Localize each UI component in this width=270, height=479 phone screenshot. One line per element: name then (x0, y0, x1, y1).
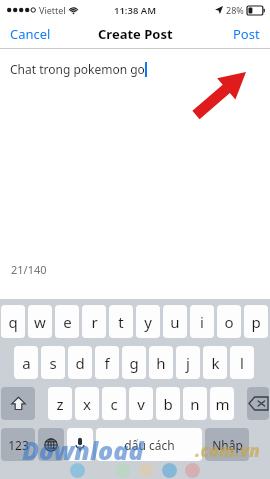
button[interactable]: b (156, 387, 180, 420)
button[interactable]: f (95, 346, 119, 379)
staticText: 11:38 AM (114, 4, 157, 17)
button[interactable]: c (102, 387, 126, 420)
staticText: r (91, 312, 98, 332)
button[interactable]: a (14, 346, 38, 379)
staticText: l (240, 353, 244, 373)
staticText: f (104, 353, 110, 373)
button[interactable]: d (68, 346, 92, 379)
button[interactable]: w (28, 305, 52, 338)
staticText: a (22, 353, 31, 373)
staticText: Nhập (212, 437, 243, 453)
staticText: 28% (226, 4, 244, 16)
staticText: z (56, 394, 64, 414)
button[interactable]: Shift (1, 387, 35, 420)
staticText: b (163, 394, 173, 414)
staticText: e (63, 312, 72, 332)
button[interactable]: e (55, 305, 79, 338)
button[interactable]: l (230, 346, 254, 379)
button[interactable]: r (82, 305, 106, 338)
button[interactable]: p (244, 305, 268, 338)
button[interactable]: Dictate (67, 428, 93, 461)
button[interactable]: 123 (1, 428, 35, 461)
staticText: k (211, 353, 220, 373)
staticText: o (224, 312, 234, 332)
button[interactable]: Backspace (247, 387, 269, 420)
staticText: dấu cách (124, 437, 175, 453)
button[interactable]: g (122, 346, 146, 379)
button[interactable]: h (149, 346, 173, 379)
staticText: d (75, 353, 85, 373)
staticText: s (49, 353, 57, 373)
button[interactable]: dấu cách (96, 428, 202, 461)
button[interactable]: z (48, 387, 72, 420)
staticText: Cancel (10, 25, 51, 43)
staticText: Create Post (98, 25, 173, 43)
button[interactable]: k (203, 346, 227, 379)
staticText: h (156, 353, 166, 373)
staticText: 123 (8, 437, 29, 453)
staticText: q (8, 312, 18, 332)
staticText: y (144, 312, 152, 332)
staticText: 21/140 (11, 262, 47, 277)
staticText: g (129, 353, 139, 373)
button[interactable]: y (136, 305, 160, 338)
staticText: Download (22, 433, 144, 467)
staticText: x (83, 394, 91, 414)
staticText: .com.vn (195, 439, 260, 462)
staticText: c (110, 394, 118, 414)
staticText: v (137, 394, 145, 414)
staticText: u (170, 312, 180, 332)
button[interactable]: Post (231, 21, 262, 47)
button[interactable]: m (210, 387, 234, 420)
button[interactable]: n (183, 387, 207, 420)
staticText: Post (233, 25, 260, 43)
staticText: Viettel (39, 4, 66, 16)
button[interactable]: Switch keyboard (38, 428, 64, 461)
staticText: w (34, 312, 46, 332)
staticText: m (215, 394, 230, 414)
button[interactable]: Nhập (205, 428, 249, 461)
button[interactable]: Cancel (8, 21, 53, 47)
button[interactable]: q (1, 305, 25, 338)
staticText: n (190, 394, 200, 414)
staticText: p (251, 312, 261, 332)
button[interactable]: i (190, 305, 214, 338)
staticText: t (118, 312, 124, 332)
button[interactable]: s (41, 346, 65, 379)
staticText: Chat trong pokemon go (10, 61, 145, 77)
staticText: i (200, 312, 204, 332)
button[interactable]: j (176, 346, 200, 379)
staticText: j (186, 353, 190, 373)
button[interactable]: x (75, 387, 99, 420)
button[interactable]: u (163, 305, 187, 338)
button[interactable]: o (217, 305, 241, 338)
button[interactable]: v (129, 387, 153, 420)
button[interactable]: t (109, 305, 133, 338)
